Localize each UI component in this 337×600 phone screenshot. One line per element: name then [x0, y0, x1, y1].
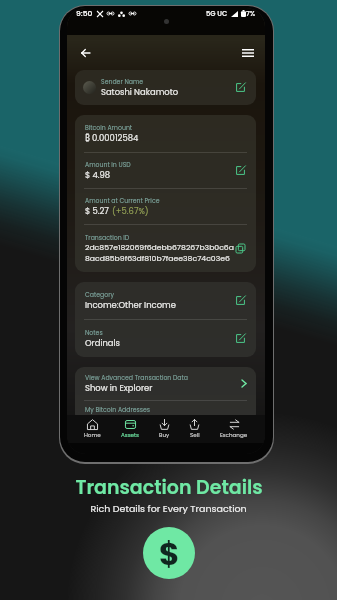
button[interactable]: Home	[82, 419, 103, 439]
staticText: View Advanced Transaction Data	[85, 373, 188, 382]
staticText: Assets	[121, 431, 140, 439]
button[interactable]: Assets	[119, 419, 142, 439]
button[interactable]: Category	[75, 282, 256, 319]
staticText: Satoshi Nakamoto	[101, 86, 179, 98]
button[interactable]: Buy	[157, 419, 172, 439]
button[interactable]: Edit	[234, 81, 247, 94]
staticText: Transaction ID	[85, 233, 130, 242]
button[interactable]: Amount in USD	[75, 153, 256, 188]
staticText: Category	[85, 290, 114, 299]
button[interactable]: Copy	[234, 242, 247, 255]
staticText: Amount in USD	[85, 160, 131, 169]
button[interactable]: Sender Name	[75, 70, 256, 105]
staticText: 9:50	[76, 8, 93, 19]
button[interactable]: Edit	[234, 164, 247, 177]
staticText: $ 5.27	[85, 205, 112, 217]
staticText: Show in Explorer	[85, 382, 153, 394]
staticText: 8acd85b9f63df810b7faee38c74c03e6	[85, 253, 230, 264]
staticText: 7%	[246, 9, 256, 19]
staticText: Bitcoin Amount	[85, 123, 133, 132]
button[interactable]: Sell	[187, 419, 202, 439]
staticText: (+5.67%)	[112, 205, 149, 217]
staticText: Home	[84, 431, 101, 439]
staticText: $ 4.98	[85, 169, 111, 181]
staticText: 5G UC	[206, 9, 228, 19]
staticText: Notes	[85, 328, 103, 337]
staticText: Rich Details for Every Transaction	[90, 502, 247, 515]
button[interactable]: Notes	[75, 320, 256, 357]
staticText: Amount at Current Price	[85, 196, 160, 205]
staticText: 2dc857e182069f6debb678267b3b0c6a	[85, 242, 234, 253]
staticText: $	[159, 532, 180, 575]
button[interactable]: Menu	[237, 42, 259, 64]
staticText: Ordinals	[85, 337, 120, 349]
button[interactable]: Back	[74, 42, 96, 64]
staticText: Sender Name	[101, 77, 144, 86]
button[interactable]: Exchange	[218, 419, 250, 439]
button[interactable]: $	[143, 527, 195, 579]
staticText: Sell	[190, 431, 200, 439]
staticText: ₿ 0.00012584	[85, 132, 139, 144]
button[interactable]: View Advanced Transaction Data	[75, 367, 256, 400]
staticText: Exchange	[220, 431, 248, 439]
staticText: Transaction Details	[75, 474, 263, 501]
staticText: Income:Other Income	[85, 299, 176, 311]
staticText: My Bitcoin Addresses	[85, 405, 151, 414]
button[interactable]: Edit	[234, 332, 247, 345]
button[interactable]: Edit	[234, 294, 247, 307]
staticText: Buy	[159, 431, 170, 439]
